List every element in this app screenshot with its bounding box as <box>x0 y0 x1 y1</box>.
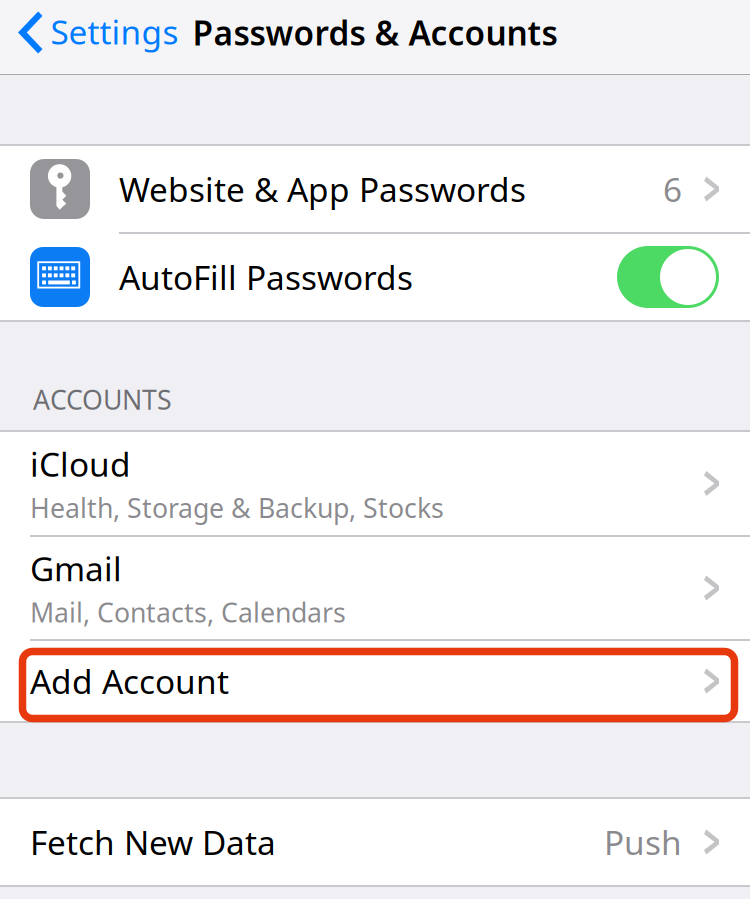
staticText: Health, Storage & Backup, Stocks <box>30 490 444 525</box>
button[interactable]: Fetch New Data <box>0 799 750 885</box>
staticText: iCloud <box>30 442 131 486</box>
staticText: Website & App Passwords <box>119 167 526 211</box>
button[interactable]: Add Account <box>0 641 750 721</box>
button[interactable]: Gmail <box>0 537 750 639</box>
staticText: Add Account <box>30 659 229 703</box>
staticText: Settings <box>50 9 178 54</box>
button[interactable]: iCloud <box>0 432 750 535</box>
staticText: Mail, Contacts, Calendars <box>30 594 346 630</box>
button[interactable]: Settings <box>0 0 186 66</box>
staticText: Passwords & Accounts <box>192 10 557 55</box>
button[interactable]: AutoFill Passwords <box>617 246 719 308</box>
staticText: ACCOUNTS <box>33 382 172 417</box>
staticText: Push <box>604 820 682 864</box>
staticText: AutoFill Passwords <box>119 255 413 299</box>
staticText: Gmail <box>30 546 122 590</box>
button[interactable]: Website & App Passwords <box>0 146 750 232</box>
staticText: Fetch New Data <box>30 820 276 864</box>
staticText: 6 <box>663 167 682 211</box>
